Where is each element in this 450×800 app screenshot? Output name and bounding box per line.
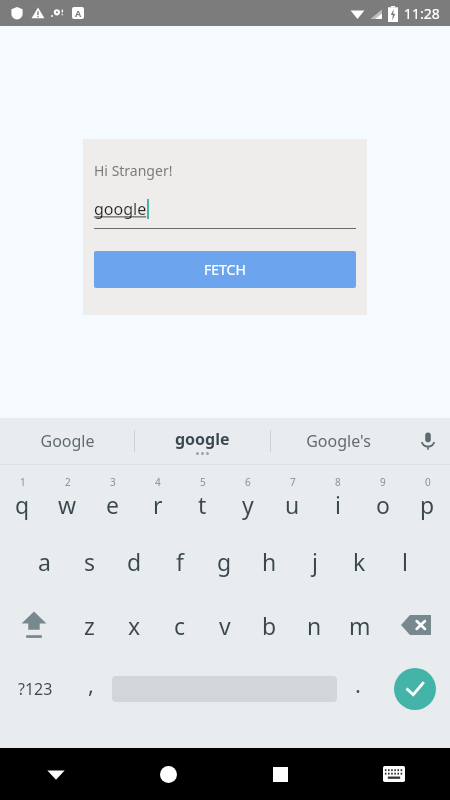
button[interactable]: Shift — [0, 593, 67, 657]
staticText: h — [262, 546, 277, 577]
staticText: 9 — [380, 475, 386, 489]
button[interactable]: k — [337, 529, 382, 593]
staticText: . — [355, 669, 361, 699]
button[interactable]: Backspace — [382, 593, 450, 657]
staticText: t — [198, 489, 207, 520]
staticText: r — [153, 489, 163, 520]
staticText: g — [217, 546, 232, 577]
staticText: b — [262, 610, 277, 641]
button[interactable]: FETCH — [94, 251, 356, 288]
button[interactable]: v — [202, 593, 247, 657]
button[interactable]: ?123 — [0, 657, 70, 721]
button[interactable]: l — [382, 529, 427, 593]
button[interactable]: b — [247, 593, 292, 657]
staticText: A — [75, 7, 82, 19]
button[interactable]: , — [70, 657, 112, 721]
button[interactable]: Google — [0, 418, 134, 464]
staticText: l — [402, 546, 408, 577]
button[interactable]: 3 — [90, 465, 135, 529]
staticText: google — [175, 428, 230, 450]
staticText: e — [106, 489, 119, 520]
staticText: d — [127, 546, 142, 577]
button[interactable]: z — [67, 593, 112, 657]
staticText: Google — [40, 430, 95, 452]
button[interactable]: 0 — [405, 465, 450, 529]
button[interactable]: 2 — [45, 465, 90, 529]
staticText: i — [335, 489, 341, 520]
button[interactable]: Home — [112, 748, 224, 800]
staticText: k — [353, 546, 366, 577]
staticText: p — [420, 489, 435, 520]
button[interactable]: Enter — [379, 657, 450, 721]
staticText: Google's — [306, 430, 371, 452]
staticText: c — [174, 610, 186, 641]
button[interactable]: Switch keyboard — [337, 748, 450, 800]
button[interactable]: 8 — [315, 465, 360, 529]
button[interactable]: g — [202, 529, 247, 593]
button[interactable]: s — [67, 529, 112, 593]
staticText: FETCH — [204, 260, 246, 279]
staticText: 7 — [290, 475, 296, 489]
button[interactable]: 7 — [270, 465, 315, 529]
staticText: m — [349, 610, 371, 641]
button[interactable]: a — [22, 529, 67, 593]
staticText: y — [242, 489, 254, 520]
button[interactable]: Google's — [271, 418, 406, 464]
button[interactable]: Space — [112, 657, 337, 721]
button[interactable]: . — [337, 657, 379, 721]
staticText: Hi Stranger! — [94, 161, 173, 180]
button[interactable]: 4 — [135, 465, 180, 529]
staticText: 3 — [110, 475, 116, 489]
staticText: 0 — [425, 475, 431, 489]
button[interactable]: Voice input — [406, 418, 450, 464]
staticText: google — [94, 198, 147, 220]
staticText: ?123 — [18, 678, 53, 700]
staticText: 11:28 — [404, 4, 440, 23]
staticText: u — [285, 489, 300, 520]
staticText: z — [84, 610, 95, 641]
staticText: x — [128, 610, 141, 641]
staticText: n — [307, 610, 322, 641]
staticText: 4 — [155, 475, 161, 489]
button[interactable]: m — [337, 593, 382, 657]
staticText: s — [84, 546, 96, 577]
staticText: v — [219, 610, 231, 641]
staticText: q — [15, 489, 30, 520]
button[interactable]: 6 — [225, 465, 270, 529]
staticText: 6 — [245, 475, 251, 489]
button[interactable]: x — [112, 593, 157, 657]
staticText: 8 — [335, 475, 341, 489]
staticText: a — [38, 546, 51, 577]
button[interactable]: Recent apps — [224, 748, 337, 800]
staticText: 1 — [20, 475, 26, 489]
button[interactable]: 9 — [360, 465, 405, 529]
button[interactable]: j — [292, 529, 337, 593]
button[interactable]: d — [112, 529, 157, 593]
button[interactable]: c — [157, 593, 202, 657]
button[interactable]: google — [135, 418, 270, 464]
button[interactable]: 1 — [0, 465, 45, 529]
button[interactable]: n — [292, 593, 337, 657]
button[interactable]: f — [157, 529, 202, 593]
staticText: 5 — [200, 475, 206, 489]
staticText: o — [376, 489, 390, 520]
staticText: j — [312, 546, 318, 577]
staticText: 2 — [65, 475, 71, 489]
button[interactable]: 5 — [180, 465, 225, 529]
button[interactable]: h — [247, 529, 292, 593]
staticText: w — [58, 489, 77, 520]
button[interactable]: Back — [0, 748, 112, 800]
staticText: f — [176, 546, 184, 577]
staticText: , — [88, 669, 94, 699]
